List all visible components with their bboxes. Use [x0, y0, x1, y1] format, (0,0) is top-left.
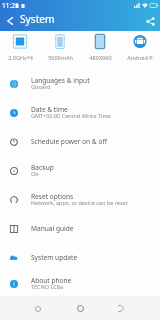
- staticText: About phone: [31, 276, 72, 285]
- staticText: Date & time: [31, 105, 68, 114]
- button[interactable]: Manual guide: [0, 214, 160, 243]
- button[interactable]: 5000mAh: [40, 31, 80, 69]
- button[interactable]: Reset options: [0, 185, 160, 214]
- staticText: 2.0GHz*4: [8, 54, 33, 61]
- staticText: System: [20, 12, 55, 26]
- staticText: Network, apps, or device can be reset: [31, 199, 128, 206]
- button[interactable]: About phone: [0, 272, 160, 296]
- button[interactable]: Schedule power on & off: [0, 127, 160, 156]
- staticText: 480X960: [89, 54, 112, 61]
- staticText: GMT+02:00 Central Africa Time: [31, 112, 111, 119]
- button[interactable]: Home: [70, 298, 91, 319]
- button[interactable]: Android P: [120, 31, 160, 69]
- button[interactable]: Languages & input: [0, 69, 160, 98]
- staticText: Android P: [127, 54, 153, 61]
- button[interactable]: Share: [140, 11, 160, 31]
- button[interactable]: Back: [0, 11, 20, 31]
- staticText: Schedule power on & off: [31, 137, 107, 146]
- staticText: 11:21: [2, 1, 19, 10]
- staticText: TECNO LC8a: [31, 283, 63, 290]
- staticText: System update: [31, 253, 78, 262]
- button[interactable]: 480X960: [80, 31, 120, 69]
- staticText: On: [31, 170, 39, 177]
- staticText: 5000mAh: [48, 54, 73, 61]
- staticText: Backup: [31, 163, 54, 172]
- staticText: Manual guide: [31, 224, 74, 233]
- button[interactable]: System update: [0, 243, 160, 272]
- button[interactable]: Recents: [110, 298, 131, 319]
- button[interactable]: 2.0GHz*4: [0, 31, 40, 69]
- button[interactable]: Backup: [0, 156, 160, 185]
- staticText: Gboard: [31, 83, 51, 90]
- button[interactable]: Date & time: [0, 98, 160, 127]
- button[interactable]: Back: [27, 298, 48, 319]
- staticText: Reset options: [31, 192, 74, 201]
- staticText: Languages & input: [31, 76, 90, 85]
